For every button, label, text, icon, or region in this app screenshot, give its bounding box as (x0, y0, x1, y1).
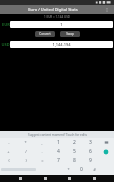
staticText: 9 (89, 157, 92, 164)
button[interactable]: Menu (89, 175, 99, 182)
staticText: 3 (89, 139, 92, 146)
button[interactable]: 1 (50, 138, 66, 147)
button[interactable]: EUR (1, 20, 113, 28)
button[interactable]: Recents (64, 175, 74, 182)
staticText: 1 EUR = 1.144 USD (44, 15, 70, 19)
staticText: Suggest content moment? Touch for edits (28, 133, 87, 137)
staticText: . (41, 149, 43, 154)
staticText: / (25, 149, 27, 154)
button[interactable]: Swap (60, 31, 80, 37)
button[interactable]: 9 (82, 156, 98, 165)
staticText: # (93, 167, 96, 172)
staticText: 0 (80, 166, 83, 173)
button[interactable]: 0 (75, 165, 88, 174)
staticText: 5 (73, 148, 76, 155)
button[interactable]: # (88, 165, 101, 174)
button[interactable]: ( (0, 156, 17, 165)
staticText: Swap (66, 32, 74, 36)
staticText: USD (1, 42, 10, 47)
staticText: + (7, 149, 10, 154)
button[interactable]: Suggest content moment? Touch for edits (0, 131, 114, 138)
button[interactable]: ) (17, 156, 34, 165)
button[interactable]: 7 (50, 156, 66, 165)
staticText: Euro / United Digital Stats (3, 7, 103, 12)
staticText: 6 (89, 148, 92, 155)
staticText: 8 (73, 157, 76, 164)
button[interactable]: More options (103, 6, 111, 14)
staticText: 7 (57, 157, 60, 164)
staticText: * (67, 167, 70, 172)
button[interactable]: 3 (82, 138, 98, 147)
button[interactable]: 8 (66, 156, 82, 165)
staticText: * (24, 140, 27, 145)
button[interactable]: Back (15, 175, 25, 182)
staticText: 2 (73, 139, 76, 146)
button[interactable]: USD (1, 40, 113, 48)
staticText: 1 (60, 22, 63, 27)
button[interactable]: = (34, 156, 50, 165)
button[interactable]: 2 (66, 138, 82, 147)
button[interactable]: Backspace (98, 138, 114, 147)
staticText: EUR (2, 22, 10, 27)
button[interactable]: * (17, 138, 34, 147)
staticText: = (41, 158, 44, 163)
button[interactable]: 4 (50, 147, 66, 156)
button[interactable]: + (0, 147, 17, 156)
button[interactable]: 5 (66, 147, 82, 156)
button[interactable]: / (17, 147, 34, 156)
staticText: 1 (57, 139, 60, 146)
button[interactable]: * (62, 165, 75, 174)
staticText: ( (8, 158, 10, 163)
staticText: ) (25, 158, 27, 163)
button[interactable]: 6 (82, 147, 98, 156)
button[interactable]: Convert (35, 31, 55, 37)
staticText: - (8, 140, 10, 145)
staticText: Convert (39, 32, 51, 36)
staticText: , (41, 140, 43, 145)
staticText: 4 (57, 148, 60, 155)
button[interactable]: Home (40, 175, 50, 182)
staticText: 1,144.194 (52, 42, 71, 47)
button[interactable]: Enter (98, 147, 114, 156)
